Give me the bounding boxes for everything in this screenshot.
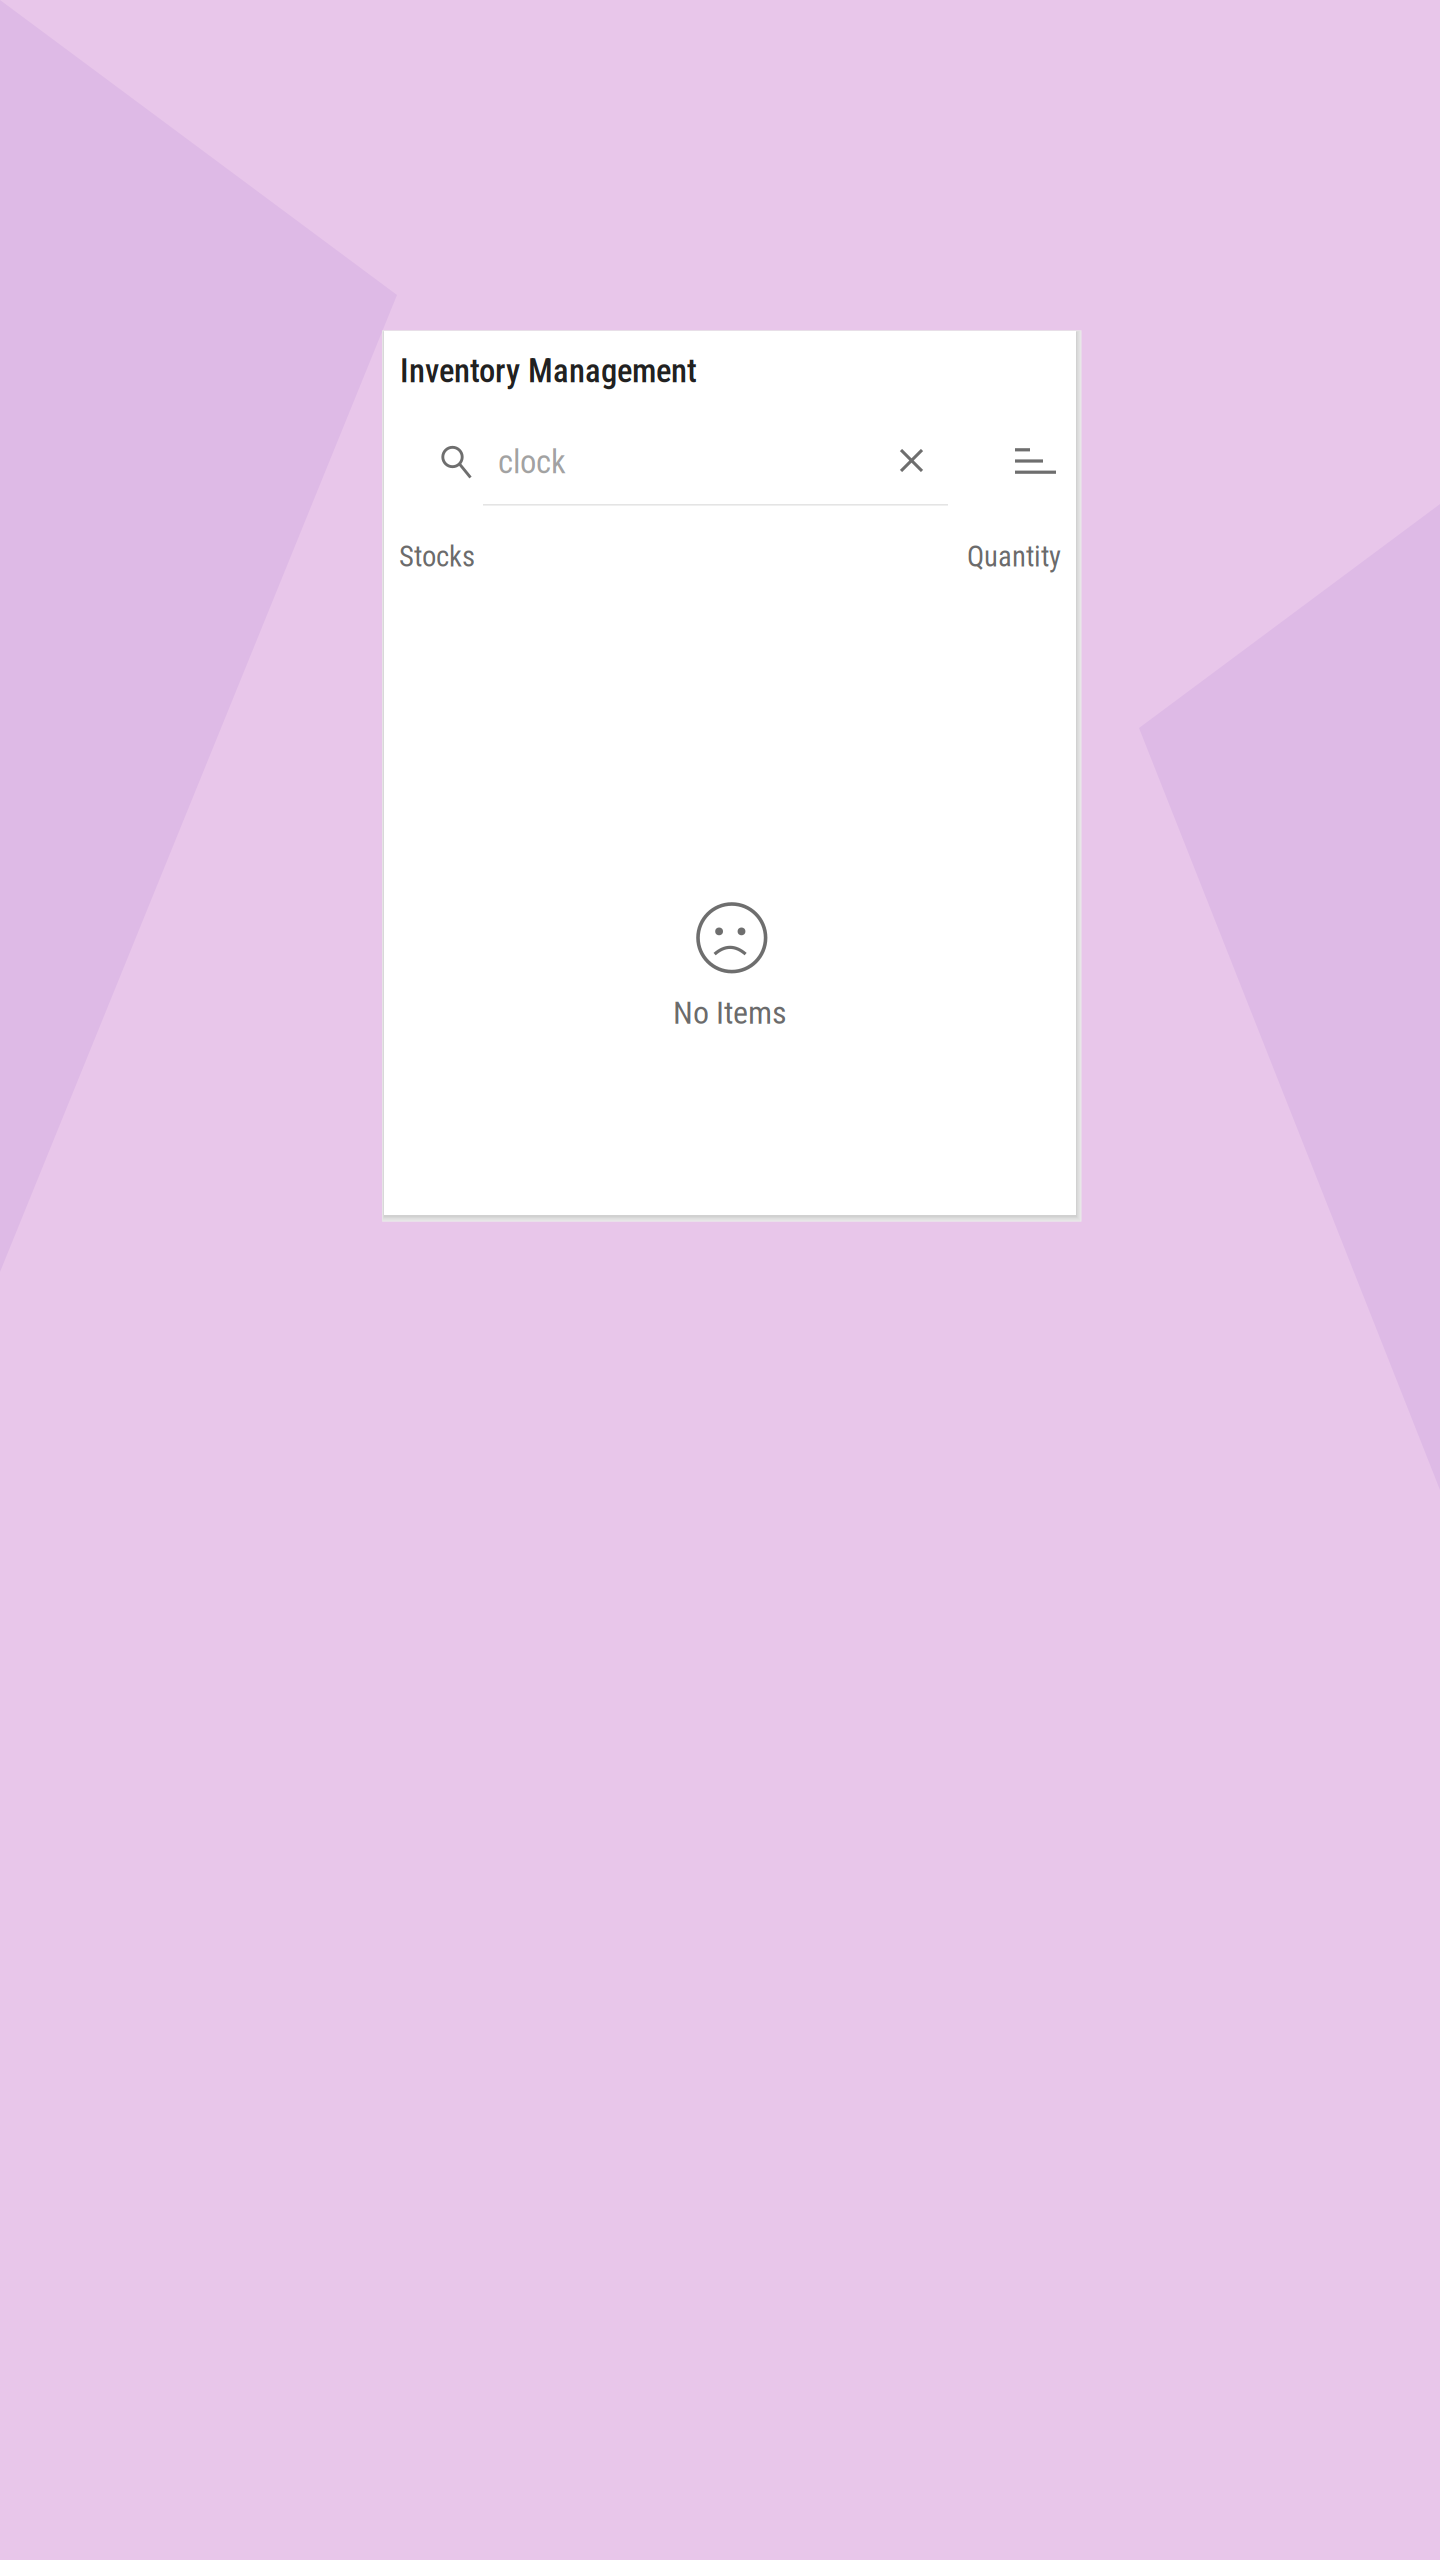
staticText: Quantity <box>967 540 1061 574</box>
button[interactable]: Search <box>428 432 476 480</box>
button[interactable]: Clear search <box>887 436 935 484</box>
staticText: No Items <box>673 994 787 1031</box>
staticText: clock <box>498 443 566 481</box>
staticText: Stocks <box>399 540 475 574</box>
button[interactable]: Sort <box>1011 436 1061 486</box>
staticText: Inventory Management <box>400 352 697 390</box>
